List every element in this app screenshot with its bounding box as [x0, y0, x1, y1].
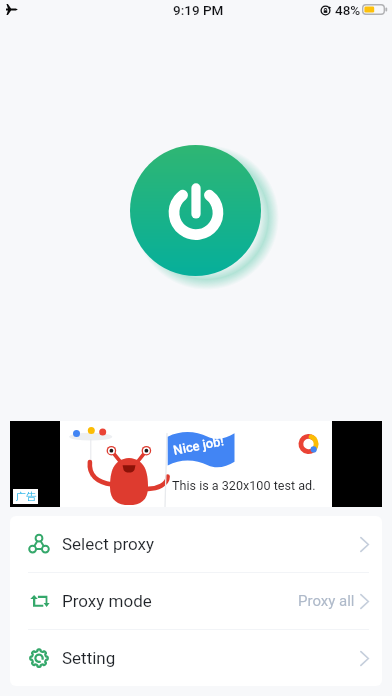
button[interactable]: Proxy mode	[10, 573, 382, 629]
staticText: Setting	[62, 648, 116, 668]
staticText: Proxy all	[298, 592, 355, 610]
button[interactable]: Power	[130, 145, 261, 276]
staticText: Nice job!	[172, 433, 226, 458]
staticText: 48%	[335, 2, 361, 18]
staticText: 9:19 PM	[173, 2, 224, 18]
staticText: 广告	[16, 490, 36, 503]
button[interactable]: Setting	[10, 630, 382, 686]
staticText: Proxy mode	[62, 591, 152, 611]
button[interactable]: Select proxy	[10, 516, 382, 572]
staticText: Select proxy	[62, 534, 155, 554]
staticText: This is a 320x100 test ad.	[172, 478, 316, 493]
